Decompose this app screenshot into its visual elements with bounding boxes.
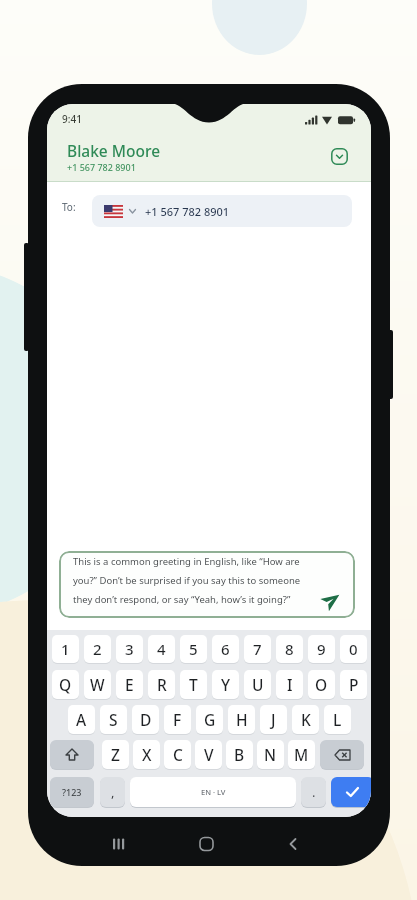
button[interactable]: Y — [212, 670, 239, 699]
staticText: M — [294, 744, 309, 765]
staticText: A — [76, 709, 87, 730]
staticText: X — [142, 744, 152, 765]
button[interactable]: M — [288, 740, 315, 769]
staticText: K — [301, 709, 311, 730]
staticText: P — [349, 674, 359, 695]
button[interactable]: P — [340, 670, 367, 699]
staticText: Y — [221, 674, 231, 695]
button[interactable]: 6 — [212, 635, 239, 663]
button[interactable]: R — [148, 670, 175, 699]
button[interactable]: G — [196, 705, 223, 734]
staticText: Q — [59, 674, 72, 695]
staticText: 2 — [93, 639, 102, 659]
staticText: Z — [111, 744, 120, 765]
button[interactable]: This is a common greeting in English, li… — [59, 551, 355, 618]
button[interactable]: K — [292, 705, 319, 734]
staticText: EN · LV — [201, 787, 226, 797]
staticText: 0 — [349, 639, 358, 659]
button[interactable]: 0 — [340, 635, 367, 663]
staticText: J — [271, 709, 276, 730]
button[interactable]: T — [180, 670, 207, 699]
button[interactable]: 3 — [116, 635, 143, 663]
staticText: F — [173, 709, 182, 730]
staticText: 9 — [317, 639, 326, 659]
button[interactable] — [50, 740, 94, 769]
staticText: D — [140, 709, 152, 730]
staticText: O — [315, 674, 328, 695]
staticText: Blake Moore — [67, 140, 161, 161]
staticText: 4 — [157, 639, 166, 659]
staticText: To: — [62, 200, 76, 214]
button[interactable]: 4 — [148, 635, 175, 663]
button[interactable]: L — [324, 705, 351, 734]
button[interactable]: 7 — [244, 635, 271, 663]
button[interactable]: ?123 — [50, 777, 94, 807]
staticText: 1 — [61, 639, 70, 659]
button[interactable] — [320, 740, 364, 769]
button[interactable]: E — [116, 670, 143, 699]
staticText: V — [204, 744, 214, 765]
button[interactable]: W — [84, 670, 111, 699]
staticText: . — [312, 783, 316, 801]
button[interactable]: . — [301, 777, 326, 807]
staticText: +1 567 782 8901 — [145, 204, 230, 219]
button[interactable]: H — [228, 705, 255, 734]
staticText: E — [125, 674, 134, 695]
button[interactable]: 2 — [84, 635, 111, 663]
button[interactable]: Q — [52, 670, 79, 699]
staticText: I — [287, 674, 293, 695]
staticText: W — [90, 674, 105, 695]
staticText: +1 567 782 8901 — [67, 161, 136, 173]
staticText: 7 — [253, 639, 262, 659]
button[interactable]: N — [257, 740, 284, 769]
staticText: U — [252, 674, 264, 695]
button[interactable]: O — [308, 670, 335, 699]
button[interactable]: V — [195, 740, 222, 769]
staticText: G — [204, 709, 216, 730]
button[interactable]: A — [68, 705, 95, 734]
button[interactable] — [331, 148, 348, 165]
staticText: C — [173, 744, 183, 765]
staticText: 8 — [285, 639, 294, 659]
button[interactable]: , — [100, 777, 125, 807]
button[interactable]: 9 — [308, 635, 335, 663]
button[interactable]: D — [132, 705, 159, 734]
staticText: This is a common greeting in English, li… — [73, 555, 301, 605]
button[interactable]: +1 567 782 8901 — [92, 195, 352, 227]
button[interactable]: B — [226, 740, 253, 769]
staticText: L — [333, 709, 342, 730]
button[interactable]: C — [164, 740, 191, 769]
staticText: N — [264, 744, 277, 765]
button[interactable]: 8 — [276, 635, 303, 663]
button[interactable]: 1 — [52, 635, 79, 663]
staticText: 9:41 — [62, 112, 82, 126]
button[interactable]: 5 — [180, 635, 207, 663]
button[interactable]: S — [100, 705, 127, 734]
staticText: , — [111, 783, 115, 801]
staticText: 6 — [221, 639, 230, 659]
button[interactable] — [331, 777, 371, 807]
button[interactable]: F — [164, 705, 191, 734]
staticText: B — [234, 744, 245, 765]
staticText: 3 — [125, 639, 134, 659]
staticText: T — [189, 674, 198, 695]
staticText: 5 — [189, 639, 198, 659]
button[interactable]: Z — [102, 740, 129, 769]
button[interactable]: X — [133, 740, 160, 769]
button[interactable]: EN · LV — [130, 777, 296, 807]
staticText: H — [236, 709, 248, 730]
button[interactable]: J — [260, 705, 287, 734]
button[interactable]: I — [276, 670, 303, 699]
button[interactable]: U — [244, 670, 271, 699]
staticText: ?123 — [62, 786, 82, 798]
staticText: S — [109, 709, 118, 730]
staticText: R — [157, 674, 167, 695]
